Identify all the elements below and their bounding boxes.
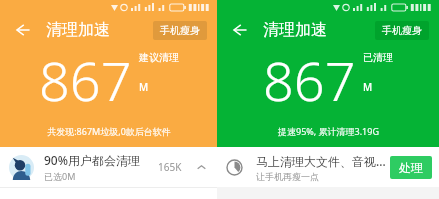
button[interactable]: Back — [10, 18, 34, 42]
staticText: M — [139, 80, 149, 94]
staticText: 提速95%, 累计清理3.19G — [278, 125, 379, 137]
staticText: 共发现:867M垃圾,0款后台软件 — [47, 125, 171, 137]
button[interactable]: 手机瘦身 — [153, 21, 207, 40]
staticText: 867 — [39, 43, 132, 117]
staticText: 手机瘦身 — [382, 24, 422, 37]
staticText: 已选0M — [44, 170, 76, 182]
staticText: 马上清理大文件、音视… — [256, 153, 386, 169]
staticText: 90%用户都会清理 — [44, 152, 140, 168]
staticText: 867 — [263, 43, 356, 117]
staticText: 手机瘦身 — [160, 24, 200, 37]
button[interactable]: Collapse — [194, 160, 208, 174]
button[interactable]: 处理 — [390, 156, 432, 179]
staticText: 已清理 — [363, 51, 393, 64]
button[interactable]: 马上清理大文件、音视… — [217, 147, 439, 187]
staticText: 清理加速 — [46, 20, 110, 40]
staticText: 清理加速 — [263, 20, 327, 40]
staticText: 让手机再瘦一点 — [256, 171, 319, 182]
staticText: 处理 — [399, 160, 423, 175]
button[interactable]: 手机瘦身 — [375, 21, 429, 40]
staticText: 建议清理 — [139, 51, 179, 64]
staticText: M — [363, 80, 373, 94]
staticText: 165K — [158, 160, 182, 174]
button[interactable]: Back — [227, 18, 251, 42]
button[interactable]: 90%用户都会清理 — [0, 147, 217, 187]
